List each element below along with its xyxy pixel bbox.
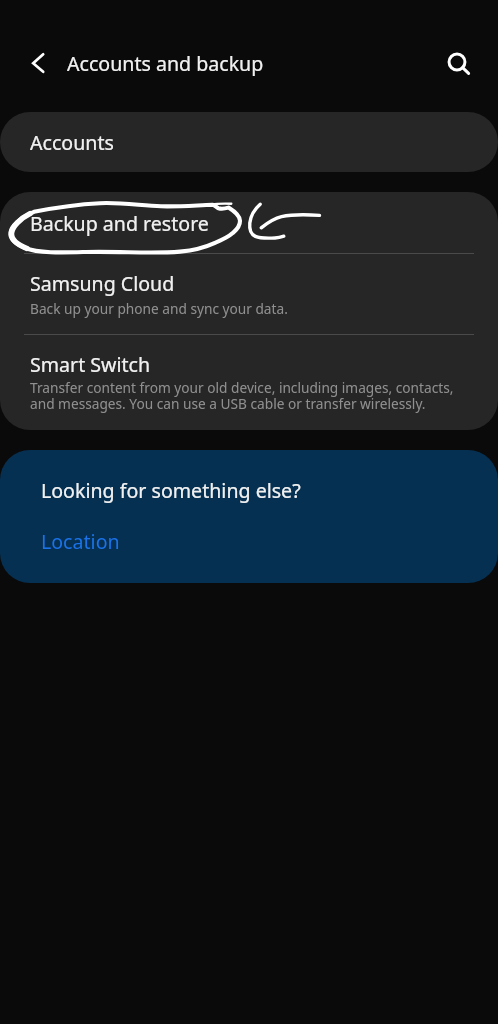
staticText: Accounts and backup	[67, 50, 264, 77]
staticText: Samsung Cloud	[30, 270, 175, 297]
staticText: Looking for something else?	[41, 477, 301, 504]
button[interactable]: Navigate up	[14, 39, 62, 87]
staticText: Location	[41, 528, 120, 555]
button[interactable]: Search	[434, 39, 482, 87]
button[interactable]: Smart Switch	[0, 335, 498, 430]
button[interactable]: Accounts	[0, 112, 498, 172]
staticText: Transfer content from your old device, i…	[30, 378, 465, 413]
staticText: Accounts	[30, 129, 114, 156]
button[interactable]: Location	[41, 528, 120, 555]
staticText: Smart Switch	[30, 351, 151, 378]
button[interactable]: Samsung Cloud	[0, 254, 498, 334]
staticText: Backup and restore	[30, 210, 209, 237]
staticText: Back up your phone and sync your data.	[30, 299, 288, 318]
button[interactable]: Backup and restore	[0, 192, 498, 253]
